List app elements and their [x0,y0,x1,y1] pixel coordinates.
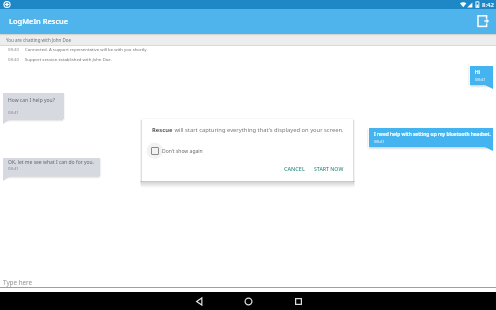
staticText: Hi [475,69,480,76]
staticText: 08:41 [475,77,486,83]
staticText: 08:41 [8,166,19,172]
staticText: You are chatting with John Doe [6,37,72,43]
staticText: Rescue [152,126,173,134]
button[interactable]: Don't show again [147,143,207,159]
staticText: 08:40 [8,56,19,62]
staticText: Connected. A support representative will… [25,46,148,52]
staticText: START NOW [314,165,344,172]
button[interactable]: Exit session [474,12,494,32]
button[interactable]: START NOW [310,161,348,176]
staticText: Support session established with John Do… [25,56,112,62]
button[interactable]: Back [182,292,216,310]
button[interactable]: CANCEL [280,161,309,176]
staticText: I need help with setting up my bluetooth… [374,131,491,138]
staticText: 8:42 [482,1,494,9]
staticText: Type here [3,278,33,287]
staticText: Don't show again [162,148,203,155]
staticText: CANCEL [284,165,305,172]
staticText: 08:41 [374,139,385,145]
button[interactable]: Recent apps [281,292,315,310]
staticText: will start capturing everything that's d… [173,126,344,134]
staticText: 08:41 [8,110,19,116]
staticText: 08:40 [8,46,19,52]
button[interactable]: Home [231,292,265,310]
staticText: LogMeIn Rescue [9,16,69,26]
staticText: OK, let me see what I can do for you. [8,159,95,166]
staticText: How can I help you? [8,97,55,104]
